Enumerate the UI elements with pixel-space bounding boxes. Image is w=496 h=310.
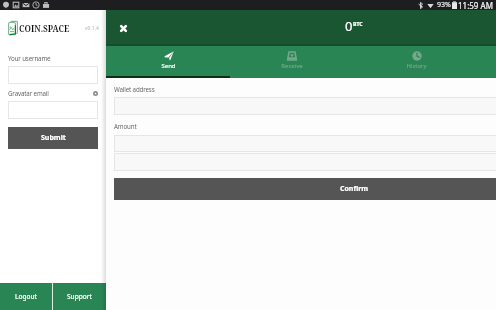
staticText: Amount — [114, 122, 137, 130]
staticText: Your username — [8, 54, 51, 62]
button[interactable] — [114, 97, 496, 115]
staticText: Logout — [15, 292, 37, 301]
staticText: 93% — [437, 0, 451, 10]
button[interactable] — [114, 153, 496, 171]
staticText: Wallet address — [114, 85, 155, 93]
button[interactable] — [114, 135, 496, 152]
staticText: COIN.SPACE — [19, 23, 70, 34]
staticText: v0.1.4 — [85, 25, 99, 32]
button[interactable]: Receive — [230, 46, 354, 78]
staticText: Send — [161, 62, 176, 70]
button[interactable]: Logout — [0, 283, 52, 310]
staticText: Receive — [281, 62, 303, 70]
staticText: BTC — [353, 20, 363, 27]
staticText: Confirm — [340, 184, 369, 194]
button[interactable]: Confirm — [114, 178, 496, 200]
button[interactable]: Send — [106, 46, 230, 78]
button[interactable] — [8, 66, 98, 84]
staticText: 0 — [345, 17, 353, 35]
staticText: Gravatar email — [8, 89, 49, 97]
staticText: Submit — [41, 133, 66, 143]
button[interactable] — [8, 101, 98, 119]
staticText: History — [406, 62, 427, 70]
button[interactable]: Support — [53, 283, 106, 310]
button[interactable]: Close — [109, 14, 137, 42]
button[interactable]: Submit — [8, 127, 98, 149]
button[interactable]: History — [354, 46, 478, 78]
staticText: 11:59 AM — [458, 0, 493, 10]
staticText: Support — [67, 292, 92, 301]
